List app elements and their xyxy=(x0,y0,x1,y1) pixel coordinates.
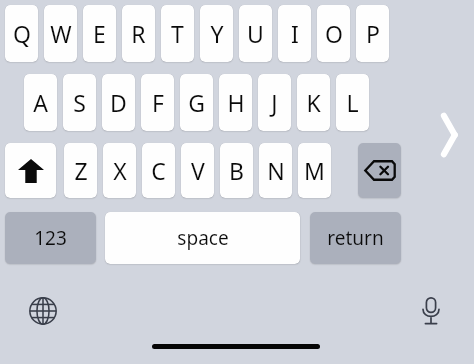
button[interactable]: O xyxy=(317,5,350,62)
staticText: S xyxy=(73,87,86,118)
button[interactable]: N xyxy=(259,143,292,198)
button[interactable]: J xyxy=(258,74,291,131)
button[interactable]: B xyxy=(220,143,253,198)
staticText: H xyxy=(227,87,245,118)
staticText: O xyxy=(325,18,343,49)
button[interactable]: H xyxy=(219,74,252,131)
staticText: C xyxy=(151,155,166,186)
button[interactable]: R xyxy=(122,5,155,62)
staticText: X xyxy=(113,155,127,186)
button[interactable]: F xyxy=(141,74,174,131)
button[interactable]: L xyxy=(336,74,369,131)
staticText: A xyxy=(33,87,48,118)
staticText: K xyxy=(306,87,321,118)
button[interactable]: C xyxy=(142,143,175,198)
staticText: J xyxy=(271,87,278,118)
button[interactable]: Change keyboard language xyxy=(22,290,64,332)
button[interactable]: A xyxy=(24,74,57,131)
staticText: P xyxy=(366,18,380,49)
staticText: M xyxy=(304,155,325,186)
button[interactable]: Shift xyxy=(5,143,56,198)
staticText: V xyxy=(191,155,205,186)
staticText: G xyxy=(188,87,205,118)
button[interactable]: V xyxy=(181,143,214,198)
staticText: D xyxy=(110,87,127,118)
staticText: F xyxy=(152,87,164,118)
button[interactable]: E xyxy=(83,5,116,62)
button[interactable]: W xyxy=(44,5,77,62)
button[interactable]: M xyxy=(298,143,331,198)
button[interactable]: space xyxy=(105,212,300,264)
staticText: U xyxy=(247,18,264,49)
staticText: Z xyxy=(74,155,88,186)
button[interactable]: K xyxy=(297,74,330,131)
button[interactable]: S xyxy=(63,74,96,131)
button[interactable]: U xyxy=(239,5,272,62)
button[interactable]: return xyxy=(310,212,401,264)
button[interactable]: Backspace xyxy=(358,143,401,198)
staticText: space xyxy=(177,225,229,251)
staticText: Q xyxy=(13,18,31,49)
button[interactable]: Y xyxy=(200,5,233,62)
staticText: B xyxy=(229,155,244,186)
button[interactable]: Z xyxy=(64,143,97,198)
staticText: 123 xyxy=(34,225,67,251)
staticText: W xyxy=(50,18,72,49)
button[interactable]: Next xyxy=(432,108,466,162)
staticText: R xyxy=(131,18,146,49)
staticText: E xyxy=(93,18,106,49)
staticText: T xyxy=(171,18,184,49)
staticText: Y xyxy=(210,18,224,49)
button[interactable]: G xyxy=(180,74,213,131)
button[interactable]: I xyxy=(278,5,311,62)
button[interactable]: T xyxy=(161,5,194,62)
button[interactable]: P xyxy=(356,5,389,62)
staticText: I xyxy=(291,18,299,49)
staticText: return xyxy=(327,225,384,251)
button[interactable]: Dictate xyxy=(410,290,452,332)
button[interactable]: Q xyxy=(5,5,38,62)
staticText: L xyxy=(346,87,359,118)
button[interactable]: 123 xyxy=(5,212,96,264)
button[interactable]: X xyxy=(103,143,136,198)
staticText: N xyxy=(267,155,285,186)
button[interactable]: D xyxy=(102,74,135,131)
